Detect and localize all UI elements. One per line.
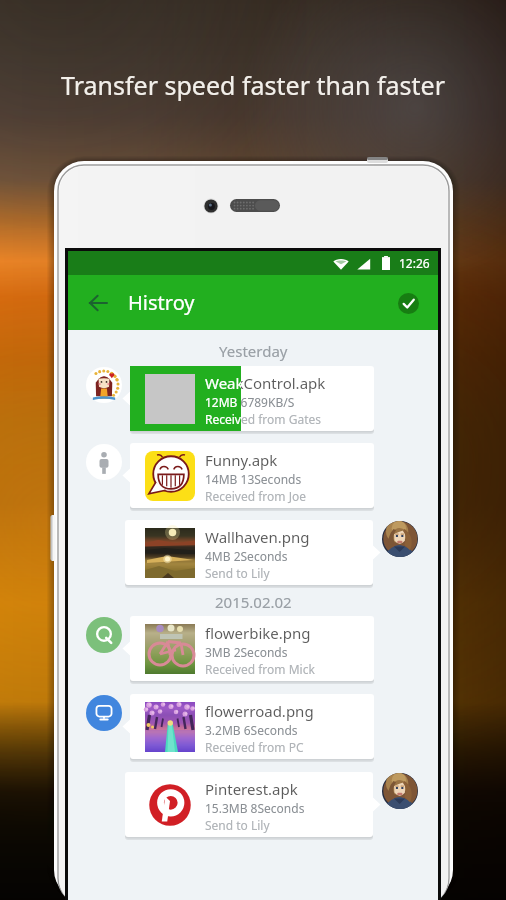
staticText: Received from Joe [205,488,306,504]
button[interactable]: Contact avatar [86,617,122,653]
button[interactable]: Wallhaven.png [125,520,373,585]
staticText: WeakControl.apk [205,373,326,393]
staticText: Send to Lily [205,565,270,581]
staticText: 3MB 2Seconds [205,644,288,660]
staticText: Received from Gates [205,411,241,427]
button[interactable]: Contact avatar [382,521,418,557]
button[interactable]: WeakControl.apk [130,366,374,431]
button[interactable]: Contact avatar [86,444,122,480]
staticText: Histroy [128,289,195,316]
staticText: 12MB 6789KB/S [205,394,295,410]
staticText: 12MB 6789KB/S [205,394,241,410]
button[interactable]: flowerroad.png [130,694,374,759]
staticText: Received from Mick [205,661,315,677]
staticText: WeakControl.apk [205,373,241,393]
staticText: 4MB 2Seconds [205,548,288,564]
button[interactable]: Contact avatar [86,367,122,403]
staticText: flowerbike.png [205,623,311,643]
staticText: 2015.02.02 [215,592,292,612]
button[interactable]: Contact avatar [86,695,122,731]
button[interactable]: Funny.apk [130,443,374,508]
staticText: 14MB 13Seconds [205,471,302,487]
staticText: Send to Lily [205,817,270,833]
staticText: Received from Gates [205,411,321,427]
staticText: Pinterest.apk [205,779,298,799]
staticText: Wallhaven.png [205,527,310,547]
button[interactable]: Select all [390,285,426,321]
staticText: Yesterday [219,341,288,361]
staticText: 12:26 [399,255,430,271]
button[interactable]: flowerbike.png [130,616,374,681]
staticText: flowerroad.png [205,701,314,721]
button[interactable]: Contact avatar [382,773,418,809]
staticText: 15.3MB 8Seconds [205,800,305,816]
staticText: 3.2MB 6Seconds [205,722,298,738]
staticText: Transfer speed faster than faster [0,68,506,102]
staticText: Funny.apk [205,450,278,470]
button[interactable]: Pinterest.apk [125,772,373,837]
button[interactable]: Back [80,285,116,321]
staticText: Received from PC [205,739,304,755]
